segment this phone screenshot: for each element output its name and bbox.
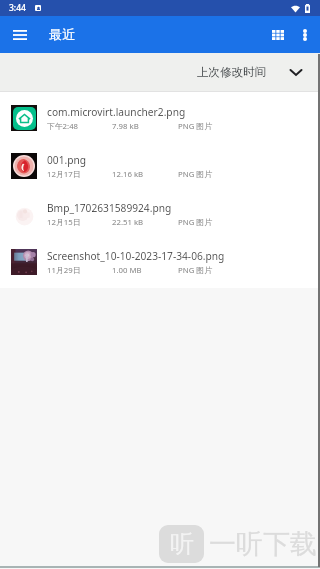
staticText: 上次修改时间 — [197, 65, 266, 79]
staticText: 3:44 — [9, 2, 26, 14]
button[interactable]: Bmp_1702631589924.png — [0, 190, 320, 238]
staticText: 11月29日 — [47, 265, 112, 276]
staticText: 一听下载 — [209, 527, 317, 561]
staticText: PNG 图片 — [178, 265, 212, 276]
staticText: 12月17日 — [47, 169, 112, 180]
staticText: 12月15日 — [47, 217, 112, 228]
staticText: 001.png — [47, 153, 87, 167]
staticText: Bmp_1702631589924.png — [47, 201, 172, 215]
button[interactable]: More options — [289, 16, 320, 53]
staticText: 7.98 kB — [112, 121, 178, 132]
staticText: 听 — [170, 529, 194, 559]
button[interactable]: 上次修改时间 — [193, 60, 307, 84]
staticText: com.microvirt.launcher2.png — [47, 105, 186, 119]
button[interactable]: Screenshot_10-10-2023-17-34-06.png — [0, 238, 320, 286]
staticText: 12.16 kB — [112, 169, 178, 180]
button[interactable]: Open navigation drawer — [0, 16, 39, 53]
staticText: PNG 图片 — [178, 217, 212, 228]
button[interactable]: 001.png — [0, 142, 320, 190]
staticText: 最近 — [49, 26, 75, 42]
staticText: PNG 图片 — [178, 121, 212, 132]
button[interactable]: com.microvirt.launcher2.png — [0, 94, 320, 142]
staticText: 下午2:48 — [47, 121, 112, 132]
staticText: PNG 图片 — [178, 169, 212, 180]
staticText: 22.51 kB — [112, 217, 178, 228]
button[interactable]: Grid view — [267, 16, 289, 53]
staticText: 1.00 MB — [112, 265, 178, 276]
staticText: Screenshot_10-10-2023-17-34-06.png — [47, 249, 225, 263]
